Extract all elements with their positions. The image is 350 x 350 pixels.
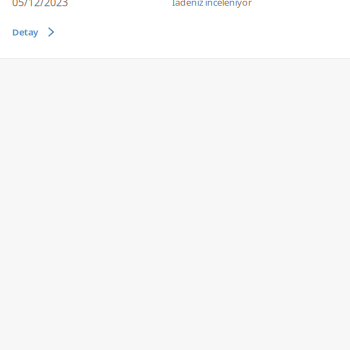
staticText: İadeniz inceleniyor	[172, 0, 252, 8]
button[interactable]: Detay	[0, 23, 64, 41]
staticText: 05/12/2023	[12, 0, 68, 9]
staticText: Detay	[12, 26, 38, 38]
